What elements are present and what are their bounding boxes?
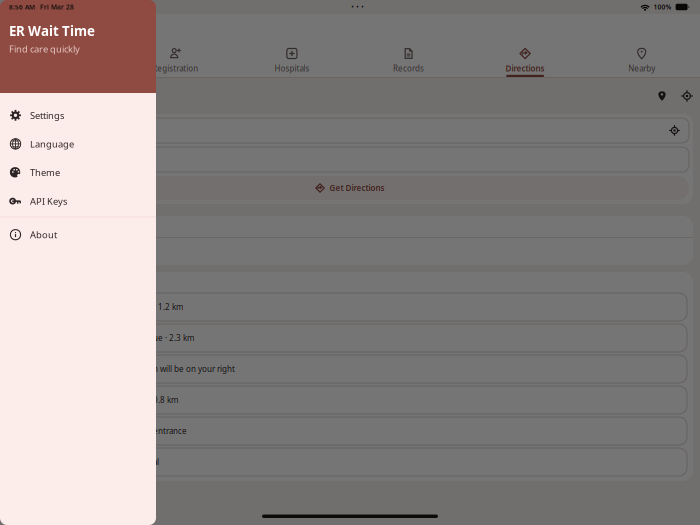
button[interactable]: Records bbox=[350, 39, 467, 77]
staticText: • • • bbox=[351, 3, 364, 11]
button[interactable]: 4 bbox=[13, 386, 687, 414]
staticText: Fri Mar 28 bbox=[41, 3, 75, 11]
button[interactable]: Nearby bbox=[583, 39, 700, 77]
staticText: Registration bbox=[152, 63, 198, 74]
staticText: Records bbox=[393, 63, 424, 74]
staticText: Head north on Oak Street for 1.2 km bbox=[47, 302, 183, 312]
staticText: Settings bbox=[30, 109, 64, 121]
staticText: Continue straight; the station will be o… bbox=[47, 364, 235, 374]
staticText: Merge onto Hospital Drive · 0.8 km bbox=[47, 395, 178, 405]
staticText: Find care quickly bbox=[9, 43, 80, 55]
button[interactable]: Language bbox=[0, 130, 156, 158]
staticText: Nearby bbox=[628, 63, 655, 74]
button[interactable]: Saved places bbox=[651, 85, 673, 107]
button[interactable]: 5 bbox=[13, 417, 687, 445]
staticText: Language bbox=[30, 138, 74, 150]
button[interactable]: 6 bbox=[13, 448, 687, 476]
button[interactable]: Hospitals bbox=[234, 39, 350, 77]
button[interactable]: Directions bbox=[467, 39, 583, 77]
button[interactable]: Get Directions bbox=[11, 176, 689, 200]
button[interactable]: Registration bbox=[117, 39, 234, 77]
staticText: ER Wait Time bbox=[9, 22, 95, 40]
staticText: Get Directions bbox=[329, 183, 384, 193]
staticText: Arrive at City General Hospital bbox=[47, 457, 159, 467]
staticText: About bbox=[30, 228, 57, 241]
staticText: Fri Mar 28 bbox=[40, 3, 74, 11]
button[interactable]: Use current location bbox=[676, 85, 698, 107]
staticText: 8:56 AM bbox=[9, 3, 35, 11]
staticText: Theme bbox=[30, 166, 60, 179]
staticText: ER Wait Time bbox=[43, 18, 129, 35]
staticText: Hospitals bbox=[274, 63, 309, 74]
button[interactable]: Theme bbox=[0, 158, 156, 187]
staticText: 100% bbox=[654, 3, 672, 11]
staticText: Route bbox=[16, 223, 39, 233]
button[interactable]: Menu bbox=[10, 16, 33, 37]
staticText: Keep left at the emergency entrance bbox=[47, 426, 187, 436]
staticText: Turn right onto Market Avenue · 2.3 km bbox=[47, 333, 194, 343]
button[interactable]: 3 bbox=[13, 355, 687, 383]
button[interactable]: 2 bbox=[13, 324, 687, 352]
button[interactable]: Settings bbox=[0, 101, 156, 130]
staticText: API Keys bbox=[30, 195, 67, 207]
button[interactable]: About bbox=[0, 220, 156, 249]
staticText: Directions bbox=[506, 63, 545, 74]
staticText: 8:56 AM bbox=[10, 3, 36, 11]
button[interactable]: 1 bbox=[13, 293, 687, 321]
button[interactable]: API Keys bbox=[0, 187, 156, 215]
